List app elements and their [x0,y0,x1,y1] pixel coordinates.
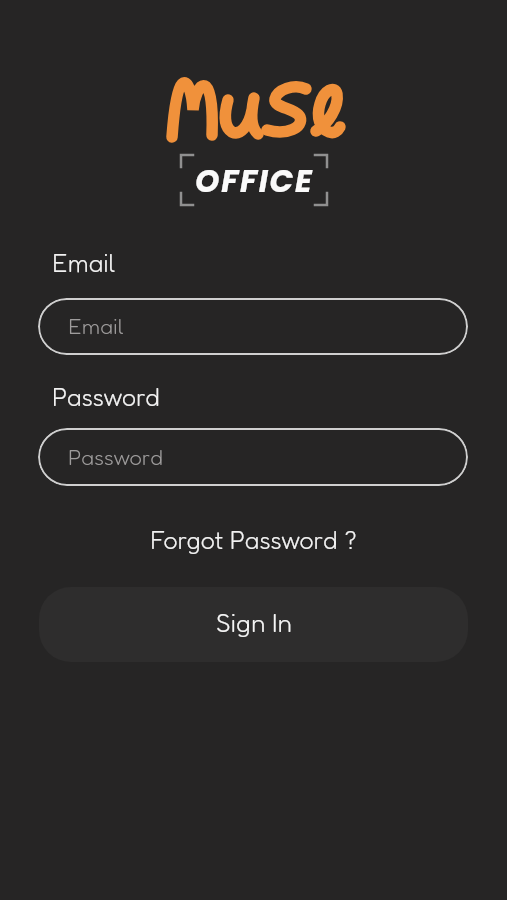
staticText: Email [52,248,116,278]
staticText: Sign In [216,607,292,638]
staticText: Password [68,444,163,471]
button[interactable]: Email [38,298,468,355]
staticText: Password [52,382,160,412]
staticText: Email [68,313,124,340]
button[interactable]: Forgot Password ? [150,525,357,555]
staticText: OFFICE [195,159,314,202]
button[interactable]: Password [38,428,468,486]
button[interactable]: Sign In [39,587,468,662]
